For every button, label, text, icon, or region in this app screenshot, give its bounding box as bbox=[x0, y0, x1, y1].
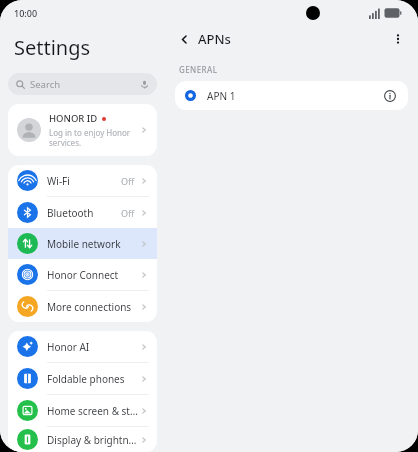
staticText: Wi-Fi bbox=[47, 174, 121, 188]
staticText: Mobile network bbox=[47, 237, 140, 251]
staticText: HONOR ID bbox=[49, 112, 98, 125]
staticText: Log in to enjoy Honor services. bbox=[49, 127, 131, 148]
button[interactable]: APN details bbox=[382, 88, 398, 104]
button[interactable]: Search bbox=[8, 73, 157, 95]
button[interactable]: Mobile network bbox=[8, 228, 157, 259]
staticText: Home screen & style bbox=[47, 404, 140, 418]
staticText: APNs bbox=[198, 30, 231, 48]
staticText: Off bbox=[121, 207, 135, 219]
staticText: Honor AI bbox=[47, 340, 140, 354]
staticText: Bluetooth bbox=[47, 206, 121, 220]
button[interactable]: Honor Connect bbox=[8, 259, 157, 290]
staticText: Display & brightness bbox=[47, 433, 140, 447]
button[interactable]: More options bbox=[388, 29, 408, 49]
staticText: Settings bbox=[14, 34, 91, 61]
staticText: Off bbox=[121, 175, 135, 187]
staticText: More connections bbox=[47, 300, 140, 314]
staticText: APN 1 bbox=[207, 89, 382, 103]
staticText: 10:00 bbox=[14, 7, 38, 19]
button[interactable]: APN 1 bbox=[175, 81, 408, 110]
button[interactable]: Honor AI bbox=[8, 331, 157, 362]
button[interactable]: HONOR ID bbox=[8, 104, 157, 156]
button[interactable]: Wi-Fi bbox=[8, 165, 157, 196]
button[interactable]: Bluetooth bbox=[8, 197, 157, 228]
button[interactable]: Foldable phones bbox=[8, 363, 157, 394]
button[interactable]: Home screen & style bbox=[8, 395, 157, 426]
button[interactable]: Back bbox=[175, 30, 193, 48]
button[interactable]: More connections bbox=[8, 291, 157, 322]
staticText: GENERAL bbox=[179, 64, 218, 75]
staticText: Foldable phones bbox=[47, 372, 140, 386]
button[interactable]: Display & brightness bbox=[8, 427, 157, 452]
staticText: Honor Connect bbox=[47, 268, 140, 282]
staticText: Search bbox=[30, 78, 61, 91]
